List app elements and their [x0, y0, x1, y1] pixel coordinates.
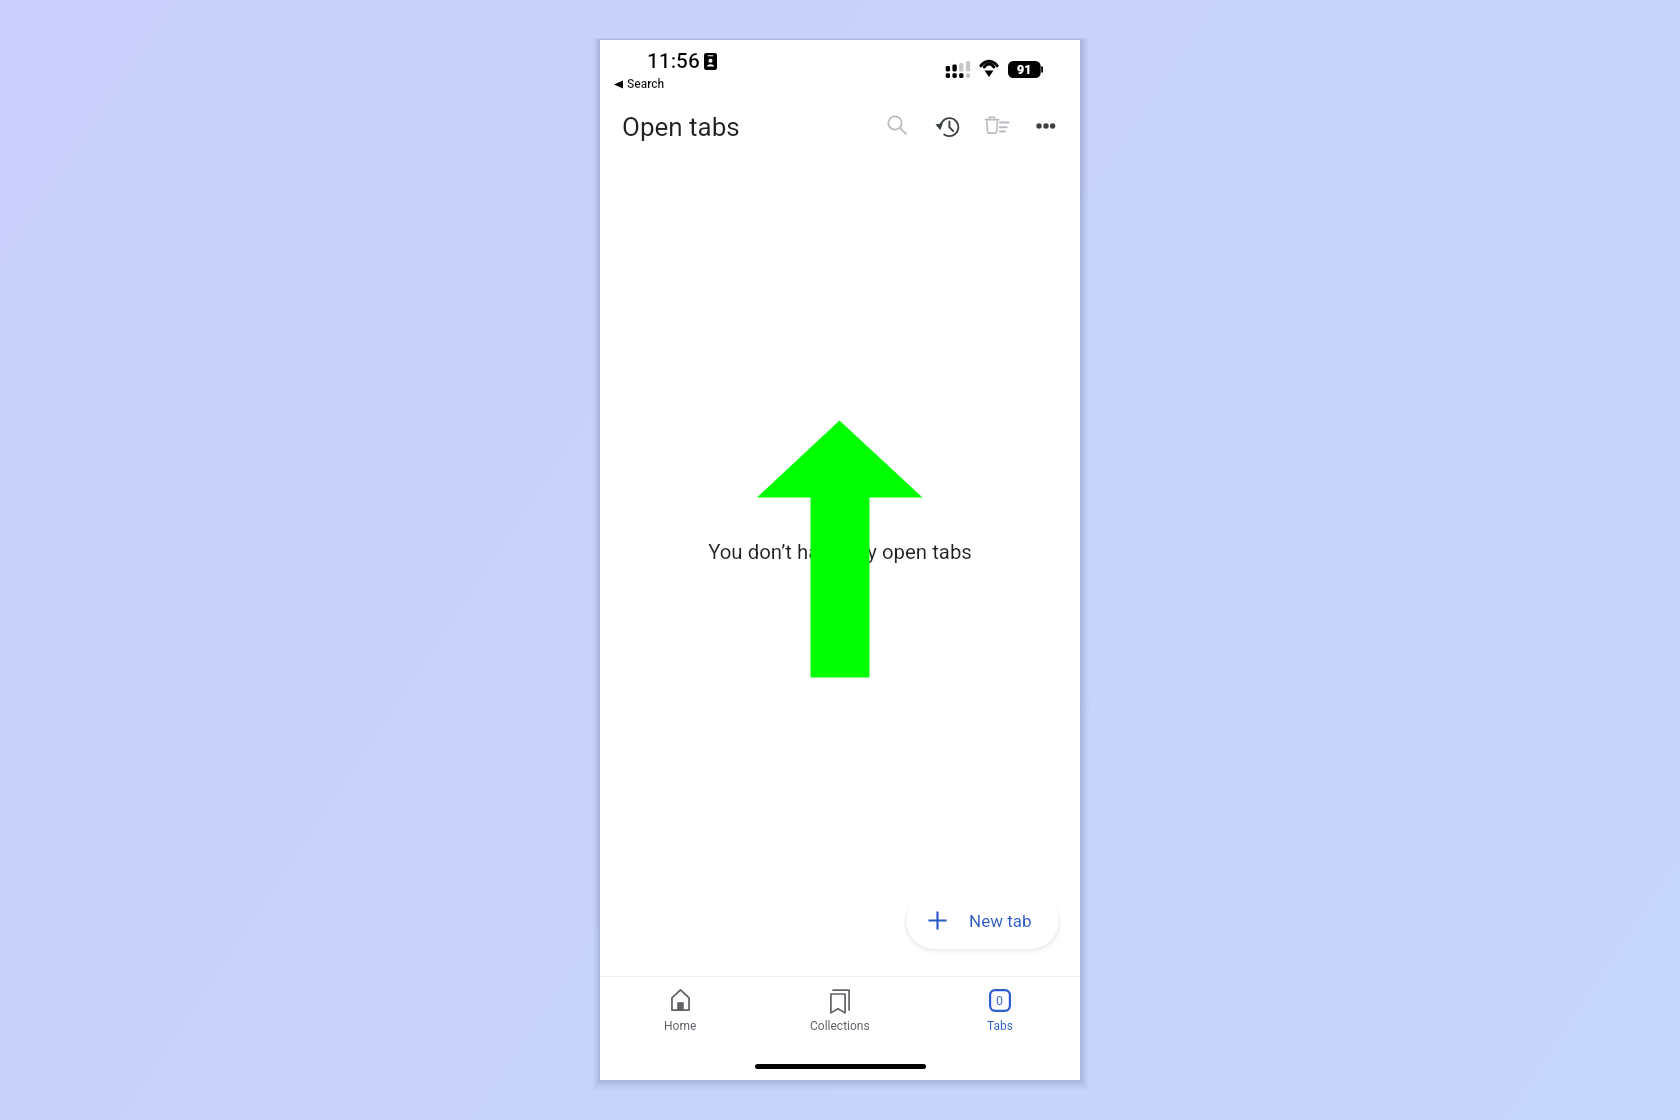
staticText: Home	[664, 1019, 697, 1033]
button[interactable]: Collections	[760, 987, 920, 1035]
button[interactable]: Search	[614, 77, 665, 91]
staticText: New tab	[969, 911, 1032, 931]
staticText: 0	[996, 993, 1004, 1008]
staticText: Collections	[810, 1019, 870, 1033]
button[interactable]: Close all tabs	[978, 113, 1006, 141]
staticText: Search	[627, 77, 665, 91]
button[interactable]: Search	[881, 109, 909, 137]
staticText: 11:56	[647, 49, 700, 73]
staticText: Open tabs	[622, 112, 740, 142]
staticText: 91	[1017, 62, 1032, 77]
button[interactable]: 0	[920, 987, 1080, 1035]
button[interactable]: More options	[1032, 112, 1060, 140]
staticText: You don’t have any open tabs	[600, 540, 1080, 564]
button[interactable]: New tab	[906, 892, 1059, 949]
staticText: Tabs	[987, 1019, 1013, 1033]
button[interactable]: Home	[600, 987, 760, 1035]
button[interactable]: History	[935, 112, 963, 140]
